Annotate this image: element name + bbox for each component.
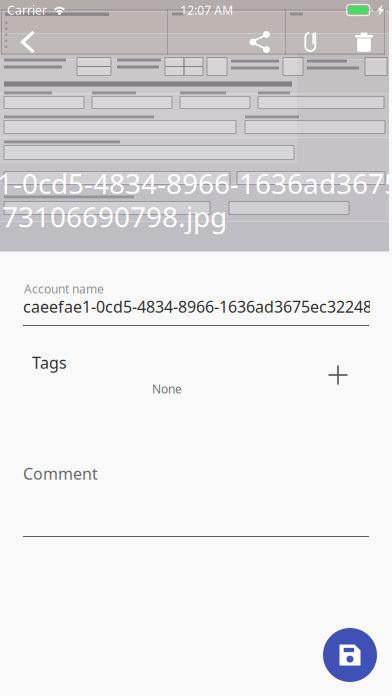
button[interactable]: Back [6, 20, 50, 64]
staticText: caeefae1-0cd5-4834-8966-1636ad3675ec3224… [0, 165, 392, 202]
staticText: Account name [24, 281, 104, 297]
button[interactable]: Delete [342, 20, 386, 64]
button[interactable]: Add tag [316, 353, 360, 397]
button[interactable]: Share [238, 20, 282, 64]
staticText: 73106690798.jpg [2, 198, 227, 235]
button[interactable]: Attach [290, 20, 334, 64]
staticText: caeefae1-0cd5-4834-8966-1636ad3675ec3224… [23, 296, 372, 317]
staticText: 12:07 AM [180, 2, 233, 18]
staticText: Carrier [7, 2, 47, 18]
button[interactable]: Save [323, 628, 377, 682]
staticText: None [152, 381, 182, 397]
staticText: Tags [32, 352, 67, 373]
staticText: Comment [23, 463, 98, 484]
